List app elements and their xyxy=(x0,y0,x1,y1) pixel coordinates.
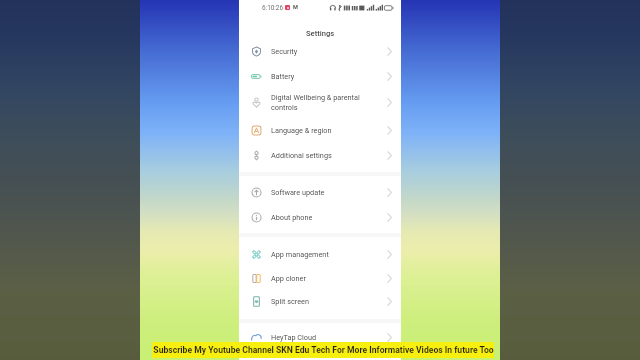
staticText: Software update xyxy=(271,188,325,197)
button[interactable]: App management xyxy=(239,242,401,266)
staticText: Security xyxy=(271,47,298,56)
button[interactable]: App cloner xyxy=(239,266,401,290)
button[interactable]: Software update xyxy=(239,180,401,204)
staticText: Battery xyxy=(271,72,295,81)
staticText: App cloner xyxy=(271,274,306,283)
staticText: Split screen xyxy=(271,297,309,306)
button[interactable]: Digital Wellbeing & parental controls xyxy=(239,89,401,115)
button[interactable]: Language & region xyxy=(239,118,401,142)
staticText: Additional settings xyxy=(271,151,332,160)
staticText: Settings xyxy=(306,29,335,38)
button[interactable]: HeyTap Cloud xyxy=(239,325,401,349)
staticText: Language & region xyxy=(271,126,332,135)
button[interactable]: Security xyxy=(239,39,401,63)
button[interactable]: About phone xyxy=(239,205,401,229)
staticText: App management xyxy=(271,250,329,259)
button[interactable]: Additional settings xyxy=(239,143,401,167)
staticText: M xyxy=(293,4,298,11)
button[interactable]: Split screen xyxy=(239,289,401,313)
button[interactable]: Battery xyxy=(239,64,401,88)
staticText: Subscribe My Youtube Channel SKN Edu Tec… xyxy=(153,345,494,355)
staticText: About phone xyxy=(271,213,313,222)
staticText: 6:10:26 xyxy=(262,4,284,12)
staticText: Digital Wellbeing & parental controls xyxy=(271,93,360,111)
staticText: HeyTap Cloud xyxy=(271,333,317,342)
